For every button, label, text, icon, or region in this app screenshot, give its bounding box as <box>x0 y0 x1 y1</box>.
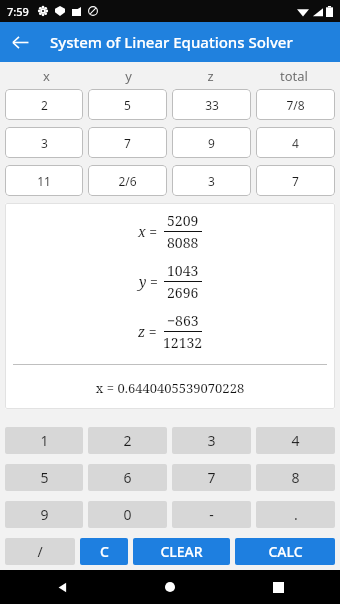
button[interactable]: 9 <box>5 501 83 528</box>
staticText: 2 <box>41 97 48 113</box>
staticText: x <box>43 67 50 85</box>
button[interactable]: 8 <box>256 464 335 491</box>
button[interactable]: Back <box>0 22 40 62</box>
button[interactable]: 4 <box>256 127 335 158</box>
button[interactable]: 1 <box>5 427 83 454</box>
button[interactable]: 33 <box>172 89 251 120</box>
button[interactable]: 11 <box>5 165 83 196</box>
staticText: x = <box>138 222 158 241</box>
staticText: 5209 <box>167 211 199 230</box>
button[interactable]: C <box>80 538 128 565</box>
staticText: 7 <box>207 468 216 487</box>
button[interactable]: 7 <box>172 464 251 491</box>
staticText: 4 <box>292 135 299 151</box>
staticText: 33 <box>205 97 219 113</box>
button[interactable]: 7/8 <box>256 89 335 120</box>
button[interactable]: Recent apps <box>264 573 292 601</box>
button[interactable]: CALC <box>235 538 335 565</box>
staticText: 2 <box>123 431 132 450</box>
staticText: 7/8 <box>286 97 305 113</box>
staticText: 2/6 <box>118 173 137 189</box>
staticText: . <box>294 505 298 524</box>
staticText: 7 <box>124 135 131 151</box>
button[interactable]: 6 <box>88 464 167 491</box>
staticText: 11 <box>37 173 51 189</box>
staticText: CALC <box>268 542 303 561</box>
staticText: y = 0.38680604369017804 <box>5 407 335 409</box>
staticText: 1 <box>40 431 49 450</box>
button[interactable]: 7 <box>88 127 167 158</box>
staticText: 2696 <box>167 283 199 302</box>
staticText: 3 <box>41 135 48 151</box>
button[interactable]: 3 <box>172 427 251 454</box>
button[interactable]: . <box>256 501 335 528</box>
button[interactable]: 2 <box>5 89 83 120</box>
button[interactable]: 5 <box>88 89 167 120</box>
button[interactable]: Home <box>156 573 184 601</box>
staticText: 4 <box>291 431 300 450</box>
staticText: System of Linear Equations Solver <box>50 32 293 52</box>
staticText: 7:59 <box>7 4 29 19</box>
button[interactable]: 5 <box>5 464 83 491</box>
staticText: 9 <box>40 505 49 524</box>
staticText: 7 <box>292 173 299 189</box>
staticText: z = <box>138 322 157 341</box>
staticText: 5 <box>124 97 131 113</box>
button[interactable]: 4 <box>256 427 335 454</box>
button[interactable]: 7 <box>256 165 335 196</box>
button[interactable]: 2 <box>88 427 167 454</box>
staticText: −863 <box>167 311 199 330</box>
staticText: 8088 <box>167 233 199 252</box>
staticText: 3 <box>208 173 215 189</box>
staticText: 0 <box>123 505 132 524</box>
staticText: 9 <box>208 135 215 151</box>
button[interactable]: - <box>172 501 251 528</box>
staticText: - <box>209 505 214 524</box>
staticText: total <box>280 67 308 85</box>
staticText: 1043 <box>167 261 199 280</box>
staticText: 6 <box>123 468 132 487</box>
staticText: x = 0.6440405539070228 <box>5 379 335 397</box>
staticText: 5 <box>40 468 49 487</box>
button[interactable]: 0 <box>88 501 167 528</box>
button[interactable]: / <box>5 538 75 565</box>
staticText: z <box>207 67 214 85</box>
button[interactable]: 3 <box>172 165 251 196</box>
staticText: C <box>100 542 109 561</box>
staticText: y = <box>139 272 158 291</box>
staticText: / <box>37 542 43 561</box>
button[interactable]: Back <box>48 573 76 601</box>
staticText: 12132 <box>163 333 203 352</box>
staticText: y <box>125 67 132 85</box>
staticText: 8 <box>291 468 300 487</box>
button[interactable]: CLEAR <box>133 538 230 565</box>
button[interactable]: 3 <box>5 127 83 158</box>
staticText: CLEAR <box>160 542 203 561</box>
button[interactable]: 2/6 <box>88 165 167 196</box>
staticText: 3 <box>207 431 216 450</box>
button[interactable]: 9 <box>172 127 251 158</box>
